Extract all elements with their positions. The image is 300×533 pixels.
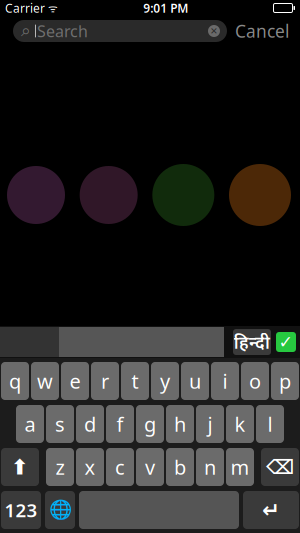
button[interactable]: p	[271, 362, 299, 400]
staticText: ⌕	[21, 22, 31, 39]
button[interactable]: m	[226, 448, 254, 486]
staticText: t	[131, 368, 138, 394]
button[interactable]: d	[76, 405, 104, 443]
button[interactable]: u	[181, 362, 209, 400]
staticText: o	[249, 368, 261, 394]
staticText: हिन्दी	[234, 330, 270, 353]
button[interactable]: n	[196, 448, 224, 486]
button[interactable]: Next keyboard	[45, 491, 75, 529]
staticText: z	[55, 454, 64, 480]
button[interactable]: Shift	[1, 448, 39, 486]
button[interactable]: q	[1, 362, 29, 400]
button[interactable]: a	[16, 405, 44, 443]
staticText: p	[279, 368, 291, 394]
button[interactable]: y	[151, 362, 179, 400]
button[interactable]: j	[196, 405, 224, 443]
button[interactable]: Numbers	[1, 491, 41, 529]
staticText: m	[230, 454, 249, 480]
staticText: s	[55, 411, 65, 437]
staticText: ⌫	[266, 456, 294, 478]
staticText: l	[267, 411, 272, 437]
staticText: Carrier	[5, 0, 45, 16]
staticText: r	[101, 368, 109, 394]
staticText: ↵	[262, 498, 280, 522]
staticText: j	[207, 411, 212, 437]
button[interactable]: w	[31, 362, 59, 400]
button[interactable]: f	[106, 405, 134, 443]
button[interactable]: ⌕	[13, 20, 227, 42]
staticText: w	[37, 368, 53, 394]
staticText: x	[84, 454, 95, 480]
button[interactable]: z	[46, 448, 74, 486]
staticText: d	[84, 411, 96, 437]
staticText: ᯤ	[45, 1, 58, 15]
staticText: g	[144, 411, 156, 437]
button[interactable]: Delete	[261, 448, 299, 486]
button[interactable]: c	[106, 448, 134, 486]
button[interactable]: e	[61, 362, 89, 400]
staticText: c	[115, 454, 125, 480]
button[interactable]: Return	[243, 491, 299, 529]
staticText: 123	[4, 498, 37, 522]
staticText: 🌐	[48, 499, 71, 521]
staticText: h	[174, 411, 186, 437]
staticText: ⬆	[11, 455, 29, 479]
button[interactable]: t	[121, 362, 149, 400]
staticText: q	[9, 368, 21, 394]
staticText: v	[145, 454, 155, 480]
button[interactable]: g	[136, 405, 164, 443]
button[interactable]: x	[76, 448, 104, 486]
staticText: y	[160, 368, 170, 394]
button[interactable]: k	[226, 405, 254, 443]
button[interactable]: o	[241, 362, 269, 400]
button[interactable]: Cancel	[227, 20, 297, 42]
button[interactable]: l	[256, 405, 284, 443]
staticText: k	[234, 411, 245, 437]
staticText: Search	[37, 20, 88, 42]
staticText: f	[116, 411, 123, 437]
staticText: i	[222, 368, 227, 394]
button[interactable]: h	[166, 405, 194, 443]
button[interactable]: i	[211, 362, 239, 400]
button[interactable]: b	[166, 448, 194, 486]
button[interactable]: हिन्दी	[233, 329, 271, 355]
staticText: e	[69, 368, 80, 394]
button[interactable]: s	[46, 405, 74, 443]
staticText: n	[204, 454, 216, 480]
staticText: ✕	[210, 26, 218, 36]
staticText: ✓	[278, 332, 293, 352]
button[interactable]: r	[91, 362, 119, 400]
staticText: a	[24, 411, 35, 437]
button[interactable]: v	[136, 448, 164, 486]
staticText: 9:01 PM	[143, 0, 188, 16]
button[interactable]: Confirm	[271, 332, 300, 352]
staticText: Cancel	[235, 19, 289, 42]
staticText: b	[174, 454, 186, 480]
staticText: u	[189, 368, 201, 394]
